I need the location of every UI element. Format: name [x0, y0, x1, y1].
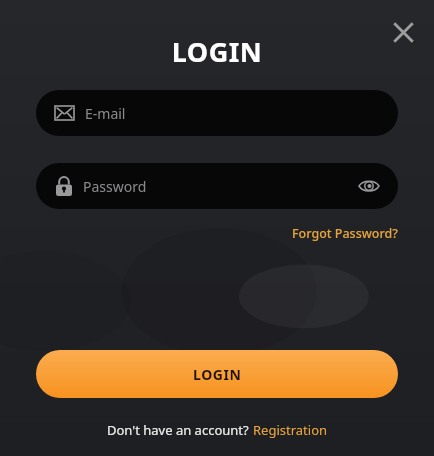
button[interactable]: LOGIN	[36, 350, 398, 398]
staticText: LOGIN	[193, 365, 242, 384]
button[interactable]: Registration	[253, 421, 328, 439]
staticText: LOGIN	[0, 33, 434, 70]
button[interactable]: Close	[381, 10, 425, 54]
button[interactable]: Show password	[354, 171, 384, 201]
staticText: Don't have an account?	[107, 421, 253, 439]
button[interactable]: Forgot Password?	[292, 225, 398, 242]
staticText: Password	[83, 177, 354, 196]
button[interactable]: E-mail	[36, 90, 398, 136]
staticText: E-mail	[85, 104, 126, 123]
staticText: Forgot Password?	[292, 225, 398, 242]
button[interactable]: Password	[36, 163, 398, 209]
staticText: Registration	[253, 421, 328, 439]
